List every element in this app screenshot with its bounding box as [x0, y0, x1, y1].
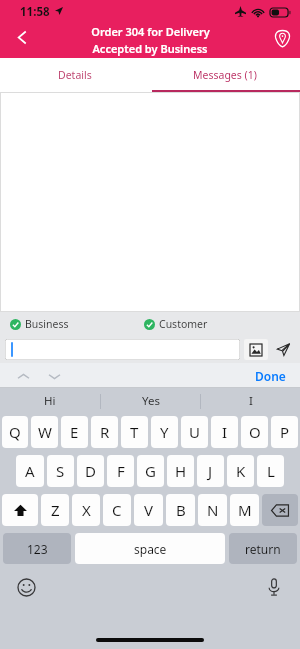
button[interactable]: T — [121, 416, 148, 448]
staticText: 11:58 — [20, 4, 50, 20]
staticText: C — [112, 500, 122, 520]
staticText: A — [25, 461, 35, 481]
staticText: Order 304 for Delivery — [91, 24, 210, 39]
button[interactable]: Customer — [144, 317, 208, 331]
button[interactable]: B — [166, 494, 195, 526]
button[interactable]: Backspace — [262, 494, 298, 526]
button[interactable]: Previous field — [12, 365, 34, 387]
staticText: H — [175, 461, 187, 481]
staticText: Accepted by Business — [92, 41, 208, 56]
staticText: Hi — [44, 393, 56, 409]
button[interactable]: Attach image — [244, 339, 268, 360]
button[interactable]: O — [241, 416, 268, 448]
button[interactable] — [5, 339, 240, 360]
staticText: Done — [255, 368, 286, 384]
button[interactable]: Details — [0, 58, 150, 92]
button[interactable]: X — [72, 494, 100, 526]
staticText: U — [189, 422, 200, 442]
staticText: 123 — [27, 541, 48, 557]
button[interactable]: C — [103, 494, 131, 526]
button[interactable]: W — [31, 416, 58, 448]
button[interactable]: J — [197, 455, 224, 487]
button[interactable]: Q — [2, 416, 28, 448]
staticText: E — [70, 422, 79, 442]
staticText: J — [208, 461, 213, 481]
button[interactable]: Business — [10, 317, 69, 331]
button[interactable]: V — [134, 494, 163, 526]
staticText: Q — [9, 422, 21, 442]
staticText: G — [145, 461, 156, 481]
button[interactable]: Z — [41, 494, 69, 526]
staticText: Y — [160, 422, 169, 442]
staticText: X — [82, 500, 91, 520]
staticText: S — [56, 461, 65, 481]
button[interactable]: I — [201, 388, 300, 414]
button[interactable]: Next field — [43, 365, 65, 387]
button[interactable]: D — [77, 455, 104, 487]
button[interactable]: Done — [255, 368, 286, 384]
button[interactable]: F — [107, 455, 134, 487]
button[interactable]: N — [198, 494, 227, 526]
button[interactable]: A — [16, 455, 44, 487]
button[interactable]: Map — [269, 25, 295, 51]
button[interactable]: P — [271, 416, 298, 448]
staticText: Customer — [159, 317, 208, 331]
button[interactable]: L — [257, 455, 284, 487]
button[interactable]: R — [91, 416, 118, 448]
button[interactable]: 123 — [3, 533, 71, 564]
staticText: return — [245, 541, 281, 557]
button[interactable]: Send — [271, 339, 295, 360]
button[interactable]: E — [61, 416, 88, 448]
button[interactable]: Yes — [101, 388, 200, 414]
staticText: F — [117, 461, 125, 481]
staticText: K — [236, 461, 246, 481]
staticText: I — [249, 393, 253, 409]
button[interactable]: return — [229, 533, 297, 564]
button[interactable]: Back — [8, 23, 36, 51]
button[interactable]: H — [167, 455, 194, 487]
staticText: V — [144, 500, 154, 520]
staticText: T — [130, 422, 139, 442]
staticText: Messages (1) — [193, 68, 257, 82]
staticText: W — [38, 422, 52, 442]
staticText: Business — [25, 317, 69, 331]
button[interactable]: K — [227, 455, 254, 487]
button[interactable]: Messages (1) — [150, 58, 300, 92]
button[interactable]: Y — [151, 416, 178, 448]
button[interactable]: I — [211, 416, 238, 448]
staticText: M — [238, 500, 252, 520]
staticText: D — [85, 461, 96, 481]
button[interactable]: G — [137, 455, 164, 487]
staticText: O — [249, 422, 261, 442]
staticText: R — [100, 422, 110, 442]
staticText: Yes — [142, 393, 160, 409]
button[interactable]: S — [47, 455, 74, 487]
staticText: N — [207, 500, 219, 520]
button[interactable]: Dictate — [262, 575, 286, 599]
button[interactable]: Emoji — [14, 575, 38, 599]
staticText: P — [280, 422, 290, 442]
button[interactable]: M — [230, 494, 259, 526]
staticText: I — [222, 422, 228, 442]
button[interactable]: Hi — [0, 388, 100, 414]
button[interactable]: space — [75, 533, 225, 564]
staticText: space — [134, 541, 167, 557]
button[interactable]: U — [181, 416, 208, 448]
staticText: Z — [51, 500, 60, 520]
staticText: Details — [58, 68, 92, 82]
staticText: B — [176, 500, 186, 520]
staticText: L — [267, 461, 275, 481]
button[interactable]: Shift — [2, 494, 38, 526]
